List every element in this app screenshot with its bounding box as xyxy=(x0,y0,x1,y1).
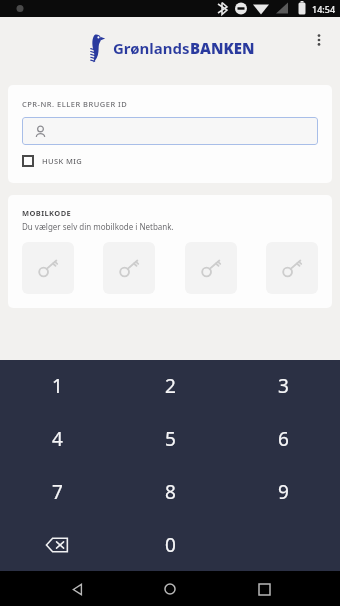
button[interactable]: 5 xyxy=(114,412,227,465)
button[interactable]: 3 xyxy=(227,360,340,412)
staticText: 8 xyxy=(165,479,176,505)
staticText: 2 xyxy=(165,373,176,399)
button[interactable]: Home xyxy=(153,572,187,606)
button[interactable] xyxy=(103,242,155,294)
button[interactable]: More options xyxy=(304,25,334,55)
button[interactable]: Backspace xyxy=(0,518,114,571)
staticText: 5 xyxy=(165,426,176,452)
button[interactable] xyxy=(22,242,74,294)
staticText: 1 xyxy=(52,373,63,399)
staticText: BANKEN xyxy=(190,38,255,58)
staticText: Du vælger selv din mobilkode i Netbank. xyxy=(22,221,174,232)
staticText: CPR-NR. ELLER BRUGER ID xyxy=(22,99,128,109)
staticText: Grønlands xyxy=(113,38,190,58)
staticText: 7 xyxy=(52,479,63,505)
button[interactable]: 9 xyxy=(227,465,340,518)
button[interactable]: Recent apps xyxy=(247,572,281,606)
staticText: HUSK MIG xyxy=(42,156,83,166)
button[interactable]: 4 xyxy=(0,412,114,465)
staticText: 14:54 xyxy=(312,3,336,15)
button[interactable]: 0 xyxy=(114,518,227,571)
staticText: 6 xyxy=(278,426,289,452)
button[interactable] xyxy=(266,242,318,294)
button[interactable]: 6 xyxy=(227,412,340,465)
button[interactable]: Back xyxy=(60,572,94,606)
button[interactable]: HUSK MIG xyxy=(22,155,83,167)
staticText: 0 xyxy=(165,532,176,558)
staticText: 3 xyxy=(278,373,289,399)
staticText: 9 xyxy=(278,479,289,505)
staticText: MOBILKODE xyxy=(22,208,72,218)
button[interactable]: 8 xyxy=(114,465,227,518)
button[interactable]: 1 xyxy=(0,360,114,412)
staticText: 4 xyxy=(52,426,63,452)
button[interactable] xyxy=(185,242,237,294)
button[interactable]: 7 xyxy=(0,465,114,518)
button[interactable]: 2 xyxy=(114,360,227,412)
button[interactable] xyxy=(22,117,318,145)
